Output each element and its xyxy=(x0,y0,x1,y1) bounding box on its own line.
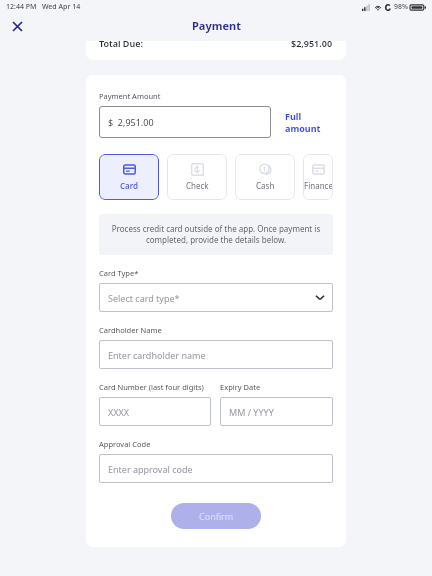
staticText: Check xyxy=(186,180,209,191)
staticText: Enter approval code xyxy=(108,463,193,475)
staticText: Card Type* xyxy=(99,268,139,278)
button[interactable]: $ 2,951.00 xyxy=(99,106,271,138)
button[interactable]: Full amount xyxy=(285,110,333,134)
button[interactable]: XXXX xyxy=(99,397,211,426)
staticText: Finance xyxy=(304,180,333,191)
staticText: Payment Amount xyxy=(99,91,161,101)
staticText: MM / YYYY xyxy=(229,406,274,418)
button[interactable]: Confirm xyxy=(171,503,261,529)
button[interactable]: Cash xyxy=(235,154,295,200)
staticText: Card Number (last four digits) xyxy=(99,382,204,392)
staticText: Approval Code xyxy=(99,439,151,449)
button[interactable]: MM / YYYY xyxy=(220,397,333,426)
staticText: 98% xyxy=(394,2,408,12)
staticText: Confirm xyxy=(199,510,234,522)
staticText: Select card type* xyxy=(108,292,180,304)
button[interactable]: Finance xyxy=(303,154,333,200)
staticText: Full amount xyxy=(285,110,333,134)
staticText: Card xyxy=(120,180,139,191)
staticText: Total Due: xyxy=(99,41,143,49)
button[interactable]: Check xyxy=(167,154,227,200)
staticText: Process credit card outside of the app. … xyxy=(111,223,321,246)
staticText: Cash xyxy=(256,180,275,191)
staticText: Enter cardholder name xyxy=(108,349,206,361)
button[interactable]: Select card type* xyxy=(99,283,333,312)
staticText: XXXX xyxy=(108,406,130,418)
staticText: Payment xyxy=(192,18,241,33)
staticText: $ 2,951.00 xyxy=(108,116,154,128)
staticText: 12:44 PM Wed Apr 14 xyxy=(6,2,81,12)
button[interactable]: Enter approval code xyxy=(99,454,333,483)
staticText: Expiry Date xyxy=(220,382,261,392)
button[interactable]: Enter cardholder name xyxy=(99,340,333,369)
staticText: $2,951.00 xyxy=(291,41,333,49)
button[interactable]: Close xyxy=(6,15,28,37)
button[interactable]: Card xyxy=(99,154,159,200)
staticText: Cardholder Name xyxy=(99,325,162,335)
